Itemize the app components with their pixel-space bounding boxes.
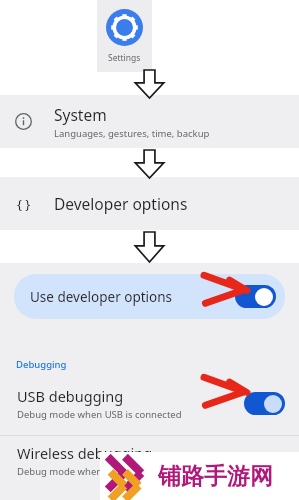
staticText: Use developer options	[30, 288, 173, 306]
staticText: Languages, gestures, time, backup	[54, 127, 210, 140]
button[interactable]: System	[0, 95, 299, 148]
button[interactable]: Toggle on	[235, 285, 276, 308]
button[interactable]: USB debugging	[0, 381, 299, 425]
button[interactable]: Toggle on	[244, 392, 285, 415]
other: Annotation arrow	[203, 374, 251, 407]
staticText: Debug mode when USB is connected	[17, 408, 182, 421]
button[interactable]: Wireless debugging	[0, 438, 299, 483]
staticText: Wireless debugging	[17, 443, 167, 463]
staticText: System	[54, 104, 107, 125]
staticText: Developer options	[54, 193, 188, 214]
staticText: 铺路手游网	[158, 462, 273, 491]
staticText: Settings	[108, 52, 141, 64]
staticText: Debugging	[16, 358, 67, 371]
staticText: USB debugging	[17, 386, 124, 406]
button[interactable]: Use developer options	[14, 274, 285, 319]
button[interactable]: { }	[0, 177, 299, 230]
staticText: Debug mode when Wi-Fi	[17, 465, 167, 478]
staticText: { }	[17, 195, 31, 213]
button[interactable]: Settings	[97, 0, 152, 72]
other: Annotation arrow	[203, 272, 251, 305]
